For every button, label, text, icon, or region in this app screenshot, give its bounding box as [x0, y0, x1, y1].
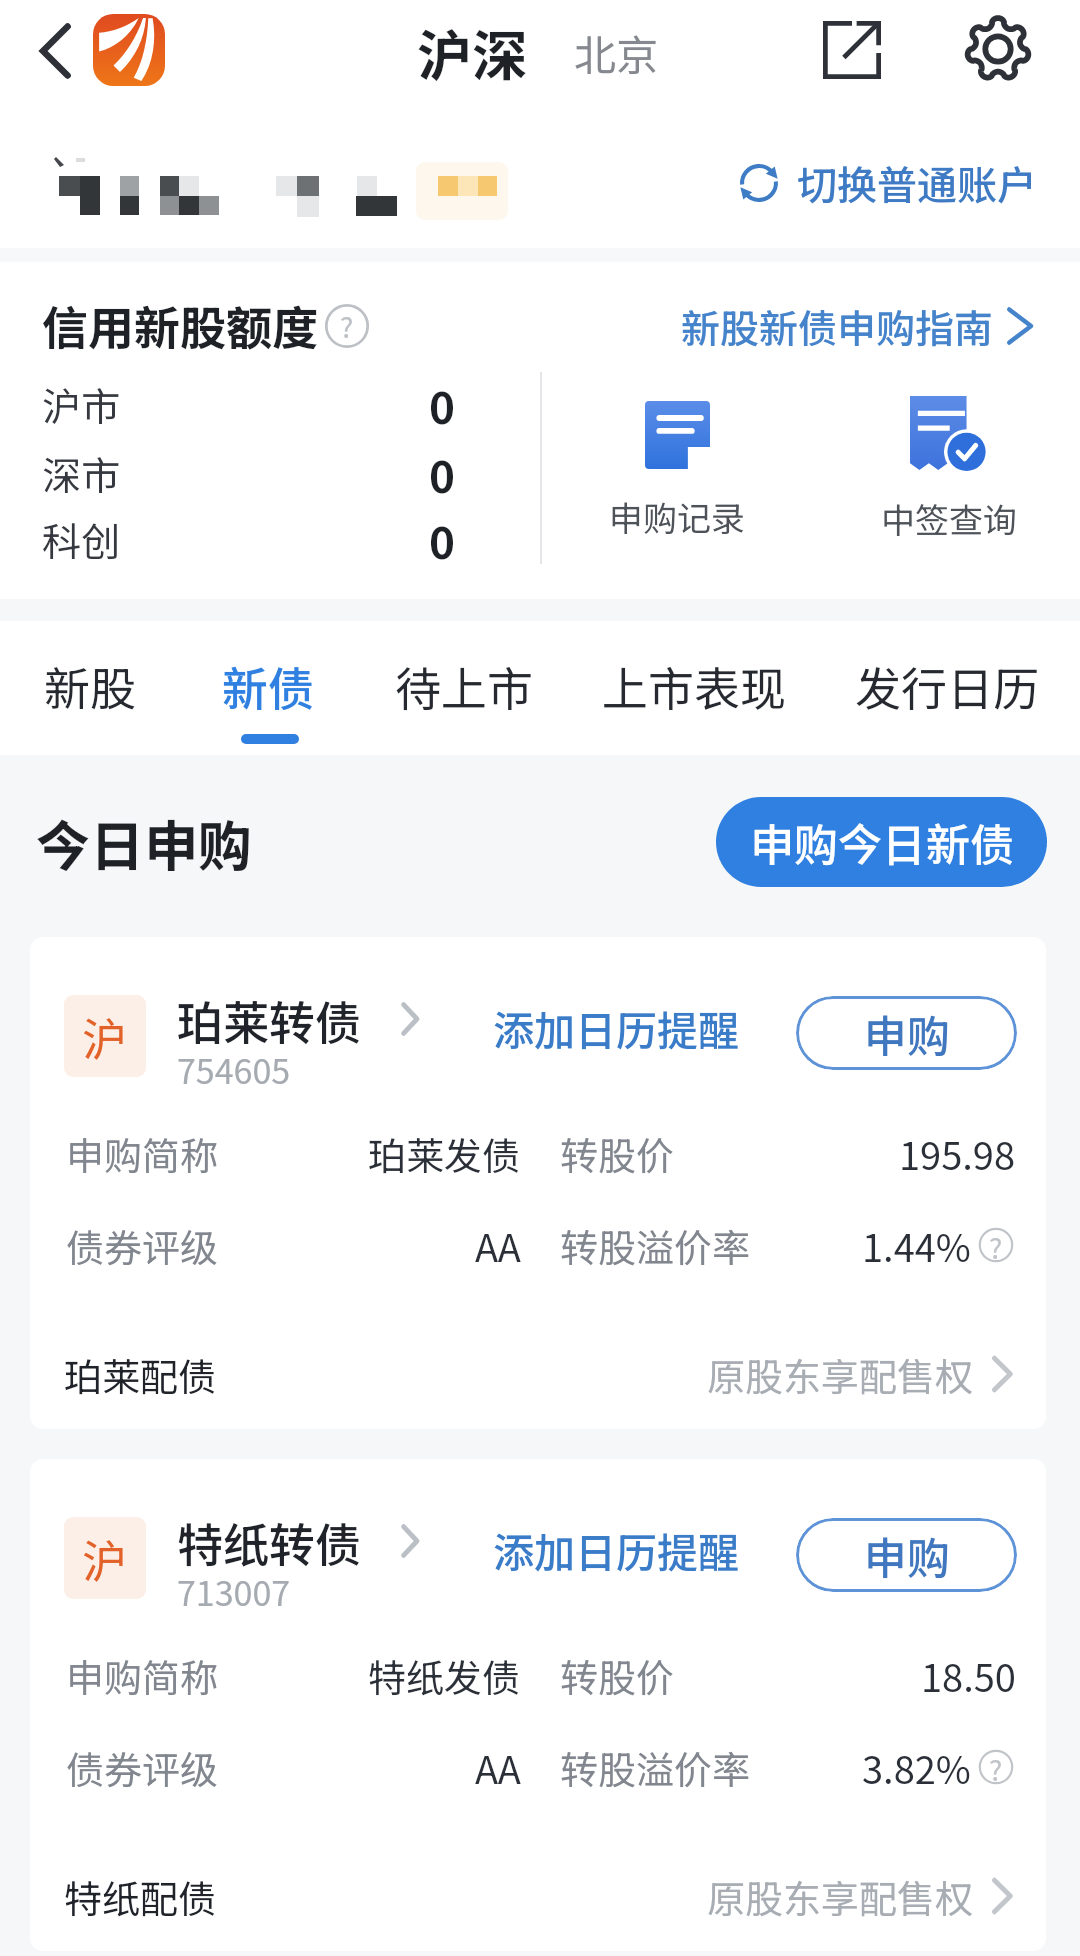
staticText: 发行日历 — [855, 653, 1039, 720]
staticText: 深市 — [42, 445, 121, 501]
staticText: 转股溢价率 — [560, 1218, 751, 1273]
staticText: ? — [340, 306, 354, 347]
staticText: 今日申购 — [36, 803, 252, 881]
staticText: 3.82% — [862, 1740, 971, 1795]
staticText: 北京 — [574, 22, 659, 83]
button[interactable]: Back — [14, 8, 96, 94]
button[interactable]: 新股新债申购指南 — [681, 292, 1046, 360]
staticText: 珀莱配债 — [64, 1347, 217, 1402]
staticText: 特纸配债 — [64, 1869, 217, 1924]
staticText: 珀莱转债 — [177, 987, 361, 1051]
button[interactable]: Switch account — [722, 148, 796, 218]
button[interactable]: Help — [324, 303, 370, 349]
staticText: 沪市 — [42, 376, 121, 432]
button[interactable]: 发行日历 — [839, 626, 1055, 756]
staticText: 添加日历提醒 — [493, 998, 739, 1057]
staticText: 申购 — [864, 1524, 950, 1586]
button[interactable]: 沪 — [30, 1459, 1046, 1951]
staticText: 债券评级 — [66, 1740, 219, 1795]
button[interactable]: Settings — [956, 7, 1040, 91]
staticText: 转股价 — [560, 1648, 675, 1703]
button[interactable]: 沪 — [30, 937, 1046, 1429]
staticText: 科创 — [42, 511, 121, 567]
staticText: 申购记录 — [609, 492, 745, 541]
staticText: 特纸发债 — [368, 1648, 521, 1703]
staticText: ? — [989, 1749, 1003, 1785]
button[interactable]: 新股 — [0, 626, 198, 756]
staticText: 沪 — [82, 1004, 128, 1069]
staticText: 转股价 — [560, 1126, 675, 1181]
staticText: 0 — [429, 442, 455, 504]
button[interactable]: 特纸配债 — [30, 1863, 1046, 1929]
button[interactable]: 珀莱配债 — [30, 1341, 1046, 1407]
button[interactable]: Share — [810, 8, 894, 92]
staticText: 原股东享配售权 — [707, 1347, 974, 1402]
button[interactable]: 中签查询 — [847, 378, 1051, 558]
staticText: AA — [475, 1218, 521, 1273]
staticText: 申购简称 — [66, 1648, 219, 1703]
staticText: 18.50 — [921, 1648, 1016, 1703]
button[interactable]: 新债 — [160, 626, 376, 756]
button[interactable]: 待上市 — [356, 626, 572, 756]
staticText: 切换普通账户 — [797, 154, 1037, 212]
staticText: 1.44% — [862, 1218, 971, 1273]
button[interactable]: 添加日历提醒 — [473, 1517, 759, 1581]
staticText: 转股溢价率 — [560, 1740, 751, 1795]
staticText: ? — [989, 1227, 1003, 1263]
staticText: 沪深 — [417, 12, 528, 92]
staticText: 申购 — [864, 1002, 950, 1064]
staticText: 信用新股额度 — [42, 292, 318, 358]
button[interactable]: 申购 — [796, 1518, 1017, 1592]
staticText: 债券评级 — [66, 1218, 219, 1273]
staticText: 珀莱发债 — [368, 1126, 521, 1181]
staticText: 添加日历提醒 — [493, 1520, 739, 1579]
button[interactable]: 申购 — [796, 996, 1017, 1070]
staticText: 中签查询 — [881, 494, 1017, 543]
staticText: 特纸转债 — [177, 1509, 361, 1573]
staticText: 上市表现 — [602, 653, 786, 720]
staticText: 新股 — [44, 653, 136, 720]
button[interactable]: 添加日历提醒 — [473, 995, 759, 1059]
staticText: 申购简称 — [66, 1126, 219, 1181]
staticText: AA — [475, 1740, 521, 1795]
staticText: 195.98 — [899, 1126, 1016, 1181]
staticText: 0 — [429, 373, 455, 435]
button[interactable]: 申购记录 — [575, 378, 779, 558]
staticText: 新债 — [222, 653, 314, 720]
staticText: 待上市 — [395, 653, 533, 720]
staticText: 754605 — [177, 1045, 291, 1093]
button[interactable]: 上市表现 — [586, 626, 802, 756]
staticText: 申购今日新债 — [750, 810, 1014, 874]
staticText: 新股新债申购指南 — [681, 298, 994, 354]
button[interactable]: 切换普通账户 — [790, 150, 1044, 216]
button[interactable]: 申购今日新债 — [716, 797, 1047, 887]
button[interactable]: App logo — [93, 14, 165, 86]
staticText: 713007 — [177, 1567, 291, 1615]
staticText: 0 — [429, 508, 455, 570]
staticText: 原股东享配售权 — [707, 1869, 974, 1924]
staticText: 沪 — [82, 1526, 128, 1591]
